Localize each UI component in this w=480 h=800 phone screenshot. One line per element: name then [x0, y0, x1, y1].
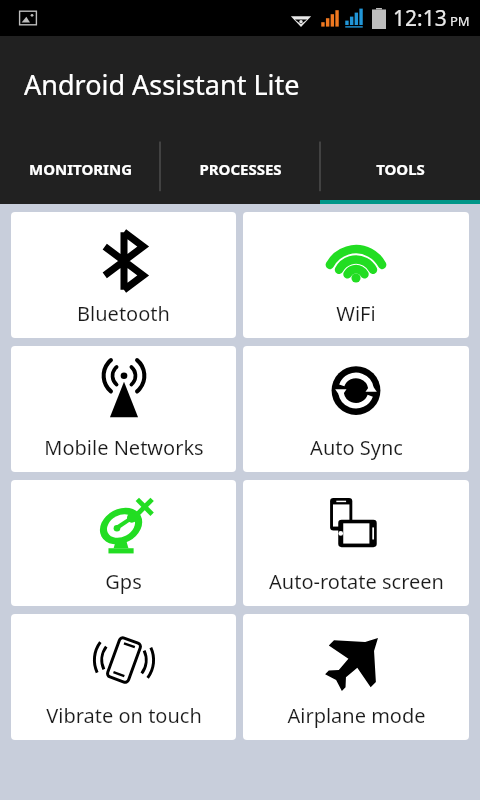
staticText: Auto-rotate screen [269, 568, 444, 595]
staticText: Airplane mode [287, 702, 426, 729]
button[interactable]: TOOLS [320, 133, 480, 204]
button[interactable]: Airplane mode [243, 614, 469, 740]
staticText: Mobile Networks [44, 434, 204, 461]
staticText: TOOLS [376, 159, 425, 179]
staticText: Vibrate on touch [46, 702, 202, 729]
button[interactable]: Gps [11, 480, 236, 606]
button[interactable]: Auto-rotate screen [243, 480, 469, 606]
staticText: WiFi [336, 300, 376, 327]
staticText: Auto Sync [310, 434, 403, 461]
staticText: Android Assistant Lite [24, 66, 300, 103]
staticText: MONITORING [29, 159, 132, 179]
staticText: PROCESSES [199, 159, 282, 179]
button[interactable]: Bluetooth [11, 212, 236, 338]
staticText: 12:13 [393, 4, 447, 33]
button[interactable]: Auto Sync [243, 346, 469, 472]
staticText: Bluetooth [77, 300, 170, 327]
button[interactable]: WiFi [243, 212, 469, 338]
staticText: PM [450, 12, 470, 30]
button[interactable]: Vibrate on touch [11, 614, 236, 740]
button[interactable]: Mobile Networks [11, 346, 236, 472]
button[interactable]: PROCESSES [160, 133, 320, 204]
staticText: Gps [105, 568, 142, 595]
button[interactable]: MONITORING [0, 133, 160, 204]
